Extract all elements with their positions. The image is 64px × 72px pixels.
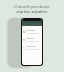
button[interactable] [23, 44, 41, 52]
staticText: Chat with your doctor [14, 4, 50, 9]
button[interactable] [22, 21, 42, 26]
staticText: anytime, anywhere [16, 9, 48, 14]
button[interactable] [23, 36, 41, 44]
button[interactable] [23, 28, 41, 36]
